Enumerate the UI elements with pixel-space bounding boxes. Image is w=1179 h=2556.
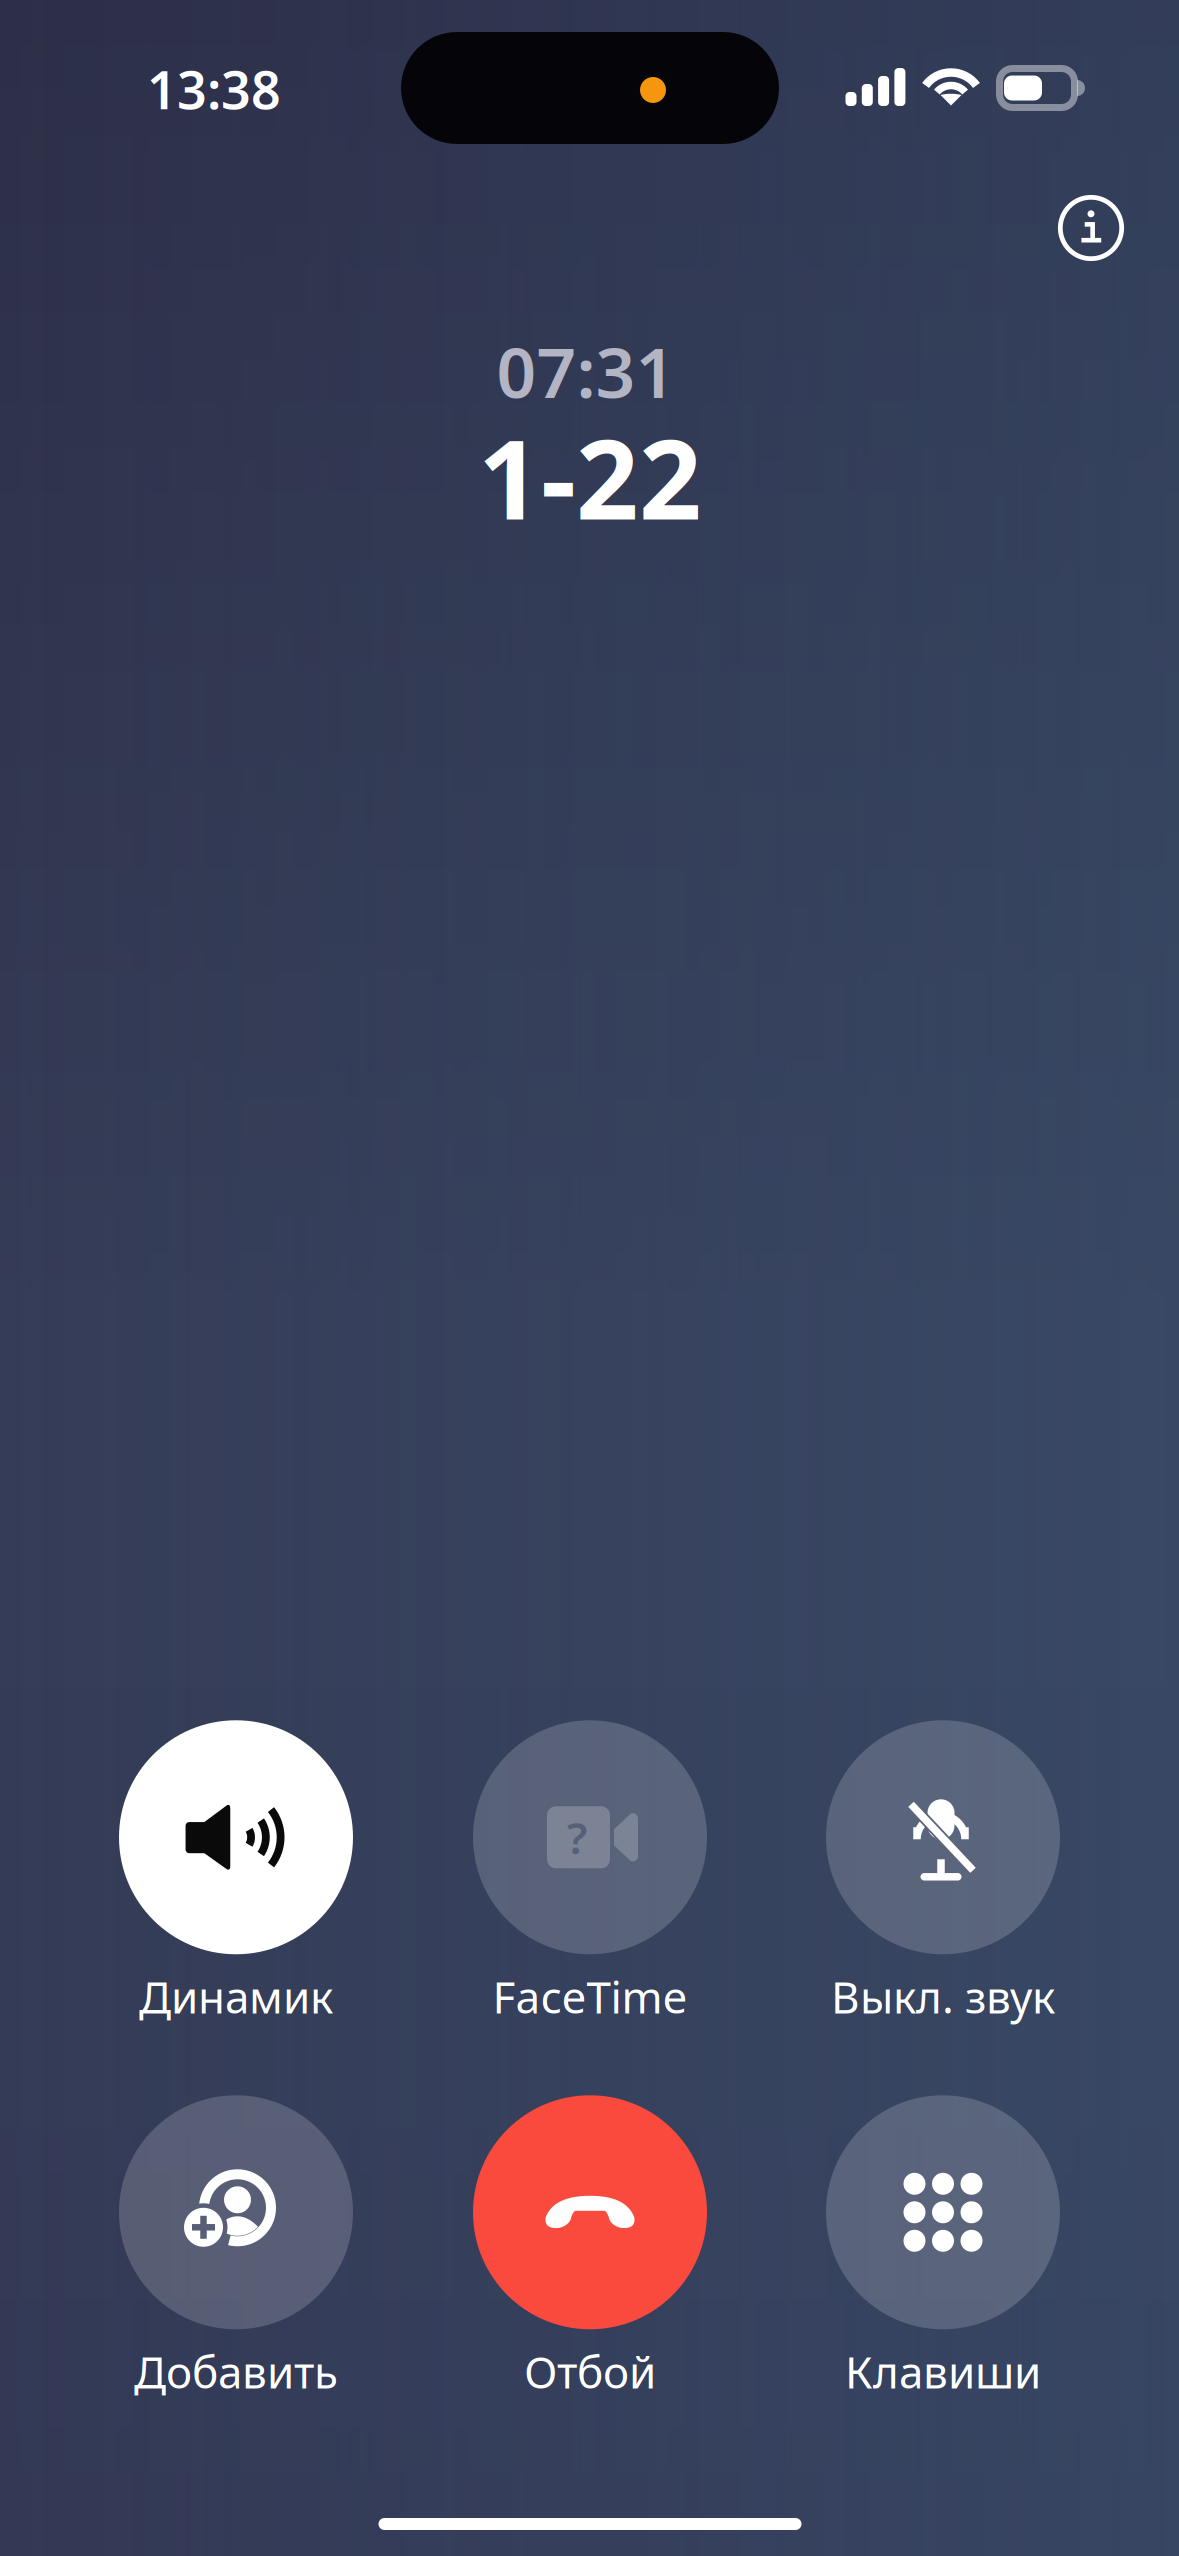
button[interactable]: Добавить bbox=[59, 2095, 413, 2401]
staticText: Динамик bbox=[139, 1967, 333, 2026]
button[interactable]: Call info bbox=[1035, 172, 1147, 284]
button[interactable]: Выкл. звук bbox=[766, 1720, 1120, 2026]
staticText: ? bbox=[567, 1808, 587, 1866]
staticText: Отбой bbox=[524, 2342, 656, 2401]
staticText: 1-22 bbox=[478, 404, 702, 550]
button[interactable]: Динамик bbox=[59, 1720, 413, 2026]
staticText: Добавить bbox=[134, 2342, 338, 2401]
staticText: 13:38 bbox=[147, 54, 281, 124]
button[interactable]: ? bbox=[413, 1720, 767, 2026]
staticText: Клавиши bbox=[845, 2342, 1041, 2401]
staticText: 07:31 bbox=[496, 325, 675, 417]
button[interactable]: Отбой bbox=[413, 2095, 767, 2401]
staticText: Выкл. звук bbox=[831, 1967, 1055, 2026]
button[interactable]: Клавиши bbox=[766, 2095, 1120, 2401]
staticText: FaceTime bbox=[492, 1967, 687, 2026]
